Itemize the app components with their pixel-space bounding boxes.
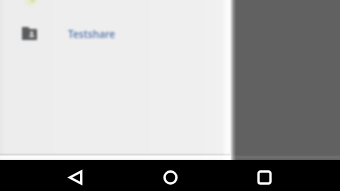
staticText: Testshare xyxy=(68,27,115,41)
button[interactable]: Home xyxy=(148,163,192,191)
button[interactable]: Recents xyxy=(242,163,286,191)
button[interactable]: Testshare xyxy=(0,20,230,48)
button[interactable]: Back xyxy=(53,163,97,191)
